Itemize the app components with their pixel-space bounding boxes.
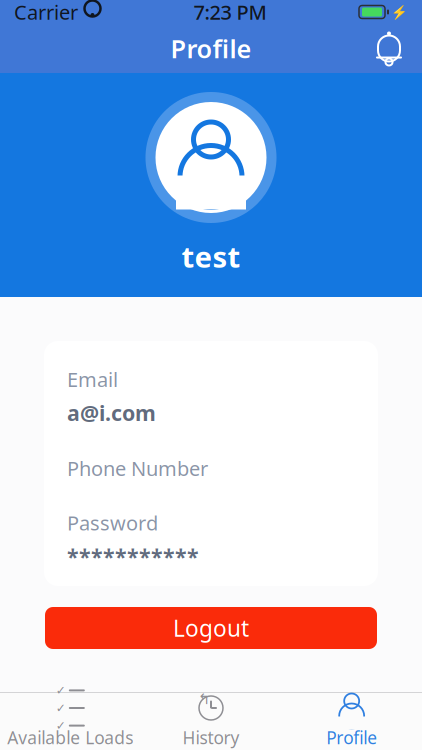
button[interactable]: Notifications	[366, 25, 412, 71]
staticText: a@i.com	[67, 399, 156, 427]
staticText: ✓	[56, 719, 66, 732]
staticText: History	[182, 726, 239, 749]
staticText: Phone Number	[67, 455, 208, 481]
staticText: ↰	[198, 691, 210, 707]
staticText: ✓	[56, 701, 66, 715]
button[interactable]: Logout	[45, 607, 377, 649]
staticText: Available Loads	[7, 726, 133, 749]
staticText: Carrier	[14, 0, 78, 25]
staticText: ***********	[67, 542, 199, 570]
staticText: Profile	[326, 726, 377, 749]
button[interactable]: ↰	[141, 693, 281, 750]
staticText: test	[181, 237, 240, 276]
staticText: Logout	[173, 613, 249, 643]
staticText: Profile	[170, 32, 251, 65]
staticText: ✓	[56, 684, 66, 697]
button[interactable]: ✓	[0, 693, 141, 750]
staticText: Password	[67, 509, 158, 536]
staticText: Email	[67, 366, 118, 393]
staticText: 7:23 PM	[193, 0, 266, 25]
staticText: ⚡	[391, 4, 408, 20]
button[interactable]: Profile	[281, 693, 422, 750]
